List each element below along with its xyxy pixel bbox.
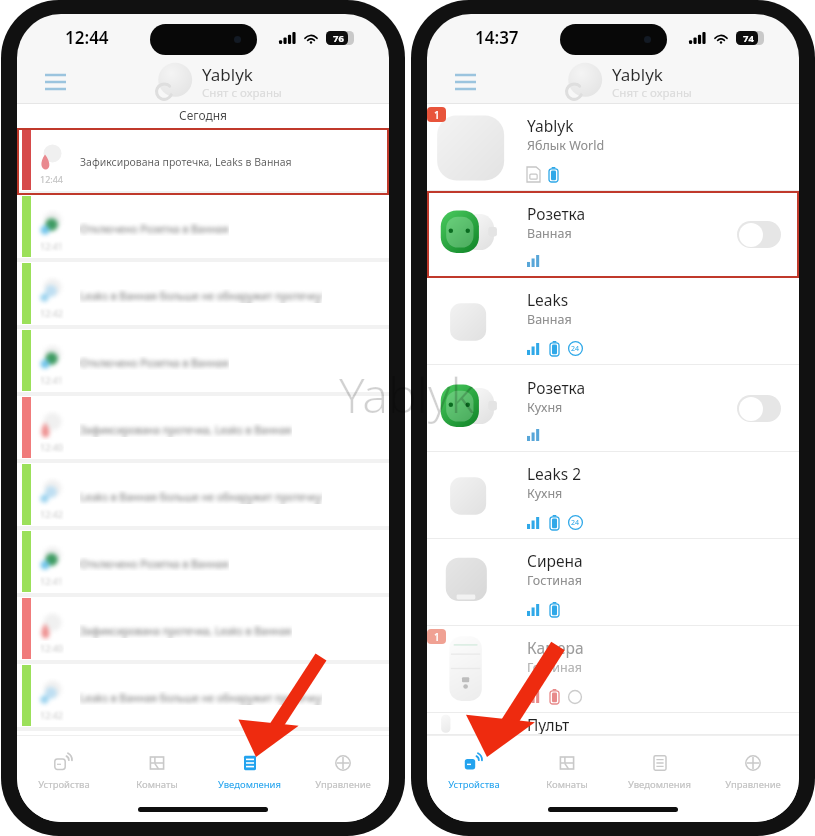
button[interactable]: Leaks в Ванная больше не обнаружит проте… [17,463,389,530]
staticText: 12:44 [40,173,64,185]
staticText: Комнаты [546,778,588,791]
staticText: Зафиксирована протечка, Leaks в Ванная [80,624,292,638]
staticText: 12:42 [40,508,64,520]
staticText: 76 [333,32,344,45]
button[interactable]: Leaks [427,278,799,365]
button[interactable]: Menu [447,63,483,99]
staticText: Ванная [527,311,572,328]
button[interactable]: Управление [706,753,799,799]
staticText: Yablyk [612,63,663,86]
staticText: Управление [725,778,781,791]
button[interactable]: Leaks в Ванная больше не обнаружит проте… [17,664,389,731]
button[interactable]: Power toggle [737,221,781,248]
staticText: Leaks в Ванная больше не обнаружит проте… [80,691,322,705]
button[interactable]: Комнаты [110,753,203,799]
staticText: Устройства [448,778,500,791]
button[interactable]: Уведомления [613,753,706,799]
button[interactable]: Камера [427,626,799,713]
staticText: Сирена [527,550,583,571]
button[interactable]: Зафиксирована протечка, Leaks в Ванная [17,396,389,463]
button[interactable]: Пульт [427,713,799,735]
staticText: Leaks в Ванная больше не обнаружит проте… [80,289,322,303]
staticText: Гостиная [527,572,582,589]
staticText: Зафиксирована протечка, Leaks в Ванная [80,423,292,437]
button[interactable]: Отключено Розетка в Ванная [17,329,389,396]
staticText: 12:40 [40,642,64,654]
staticText: Уведомления [628,778,691,791]
staticText: Снят с охраны [612,85,692,101]
staticText: 12:44 [65,26,109,49]
button[interactable]: Зафиксирована протечка, Leaks в Ванная [17,128,389,195]
button[interactable]: Устройства [427,753,520,799]
staticText: 1 [434,108,440,122]
staticText: Отключено Розетка в Ванная [80,557,229,571]
staticText: Leaks в Ванная больше не обнаружит проте… [80,490,322,504]
button[interactable]: Комнаты [520,753,613,799]
staticText: 24 [571,518,580,528]
button[interactable]: Power toggle [737,395,781,422]
staticText: 12:41 [40,575,64,587]
staticText: 12:41 [40,240,64,252]
button[interactable]: Menu [37,63,73,99]
staticText: Гостиная [527,659,582,676]
button[interactable]: Зафиксирована протечка, Leaks в Ванная [17,597,389,664]
staticText: Розетка [527,377,586,398]
staticText: Розетка [527,203,586,224]
staticText: Leaks [527,289,569,310]
staticText: 12:42 [40,709,64,721]
staticText: Пульт [527,714,570,735]
button[interactable]: Устройства [17,753,110,799]
button[interactable]: Yablyk [427,104,799,191]
staticText: 14:37 [475,26,519,49]
staticText: 24 [571,344,580,354]
staticText: Кухня [527,399,563,416]
staticText: Комнаты [136,778,178,791]
staticText: Сегодня [179,107,228,123]
staticText: Камера [527,637,584,658]
staticText: 12:42 [40,307,64,319]
staticText: Устройства [38,778,90,791]
staticText: 1 [434,630,440,644]
staticText: Yablyk [339,362,475,427]
staticText: Яблык World [527,137,605,154]
staticText: Ванная [527,225,572,242]
staticText: Отключено Розетка в Ванная [80,356,229,370]
staticText: Управление [315,778,371,791]
staticText: Уведомления [218,778,281,791]
staticText: 12:41 [40,374,64,386]
staticText: Зафиксирована протечка, Leaks в Ванная [80,155,292,169]
staticText: Yablyk [202,63,253,86]
staticText: Снят с охраны [202,85,282,101]
button[interactable]: Розетка [427,365,799,452]
button[interactable]: Leaks в Ванная больше не обнаружит проте… [17,262,389,329]
button[interactable]: Отключено Розетка в Ванная [17,530,389,597]
staticText: Отключено Розетка в Ванная [80,222,229,236]
staticText: Leaks 2 [527,463,582,484]
button[interactable]: Leaks 2 [427,452,799,539]
button[interactable]: Управление [296,753,389,799]
staticText: 74 [743,32,754,45]
button[interactable]: Сирена [427,539,799,626]
button[interactable]: Розетка [427,191,799,278]
staticText: 12:40 [40,441,64,453]
button[interactable]: Отключено Розетка в Ванная [17,195,389,262]
button[interactable]: Уведомления [203,753,296,799]
staticText: Yablyk [527,115,574,136]
staticText: Кухня [527,485,563,502]
